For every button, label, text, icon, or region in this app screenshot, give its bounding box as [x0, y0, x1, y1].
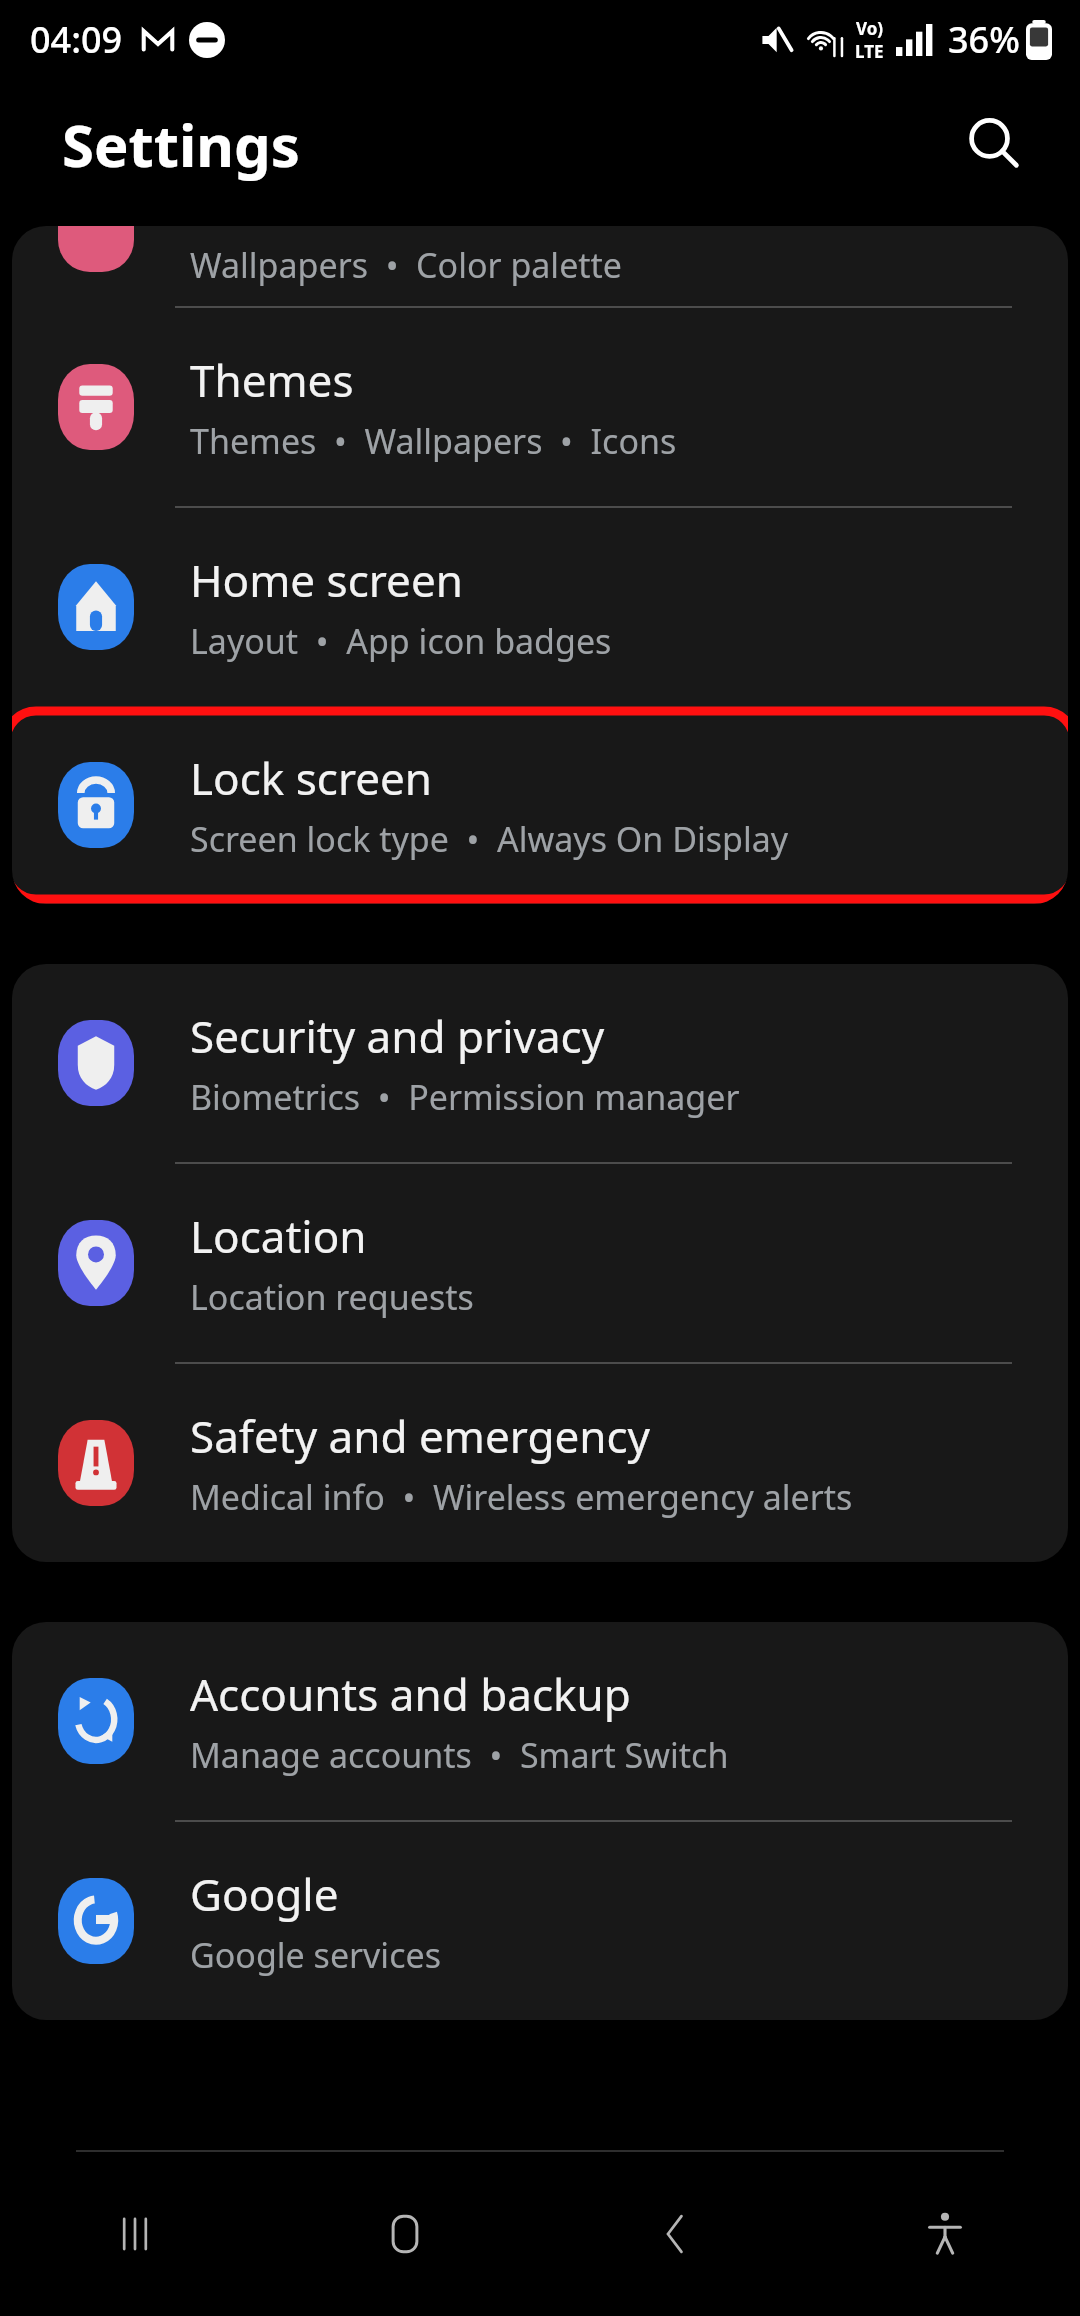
staticText: Google [190, 1864, 339, 1924]
button[interactable]: Back [540, 2152, 810, 2316]
button[interactable]: Lock screen [12, 706, 1068, 904]
button[interactable]: Accessibility [810, 2152, 1080, 2316]
staticText: Themes • Wallpapers • Icons [190, 418, 677, 464]
button[interactable]: Recent apps [0, 2152, 270, 2316]
staticText: Screen lock type • Always On Display [190, 816, 789, 862]
staticText: Manage accounts • Smart Switch [190, 1732, 729, 1778]
staticText: LTE [855, 40, 884, 63]
staticText: 36% [948, 15, 1020, 64]
staticText: Safety and emergency [190, 1406, 651, 1466]
staticText: Medical info • Wireless emergency alerts [190, 1474, 853, 1520]
button[interactable]: Themes [12, 308, 1068, 506]
staticText: Settings [62, 105, 300, 184]
button[interactable]: Google [12, 1822, 1068, 2020]
button[interactable]: Security and privacy [12, 964, 1068, 1162]
button[interactable]: Accounts and backup [12, 1622, 1068, 1820]
staticText: Lock screen [190, 748, 433, 808]
button[interactable]: Search [946, 96, 1042, 192]
staticText: Accounts and backup [190, 1664, 631, 1724]
staticText: Wallpapers • Color palette [190, 242, 623, 288]
button[interactable]: Safety and emergency [12, 1364, 1068, 1562]
staticText: Security and privacy [190, 1006, 605, 1066]
staticText: Google services [190, 1932, 441, 1978]
staticText: Vo) [856, 17, 884, 40]
staticText: Location requests [190, 1274, 474, 1320]
staticText: Home screen [190, 550, 463, 610]
staticText: 04:09 [30, 15, 123, 64]
staticText: Biometrics • Permission manager [190, 1074, 740, 1120]
staticText: Themes [190, 350, 354, 410]
staticText: Layout • App icon badges [190, 618, 612, 664]
button[interactable]: Location [12, 1164, 1068, 1362]
button[interactable]: Home screen [12, 508, 1068, 706]
button[interactable]: Home [270, 2152, 540, 2316]
staticText: Location [190, 1206, 367, 1266]
button[interactable]: Wallpapers • Color palette [12, 226, 1068, 306]
